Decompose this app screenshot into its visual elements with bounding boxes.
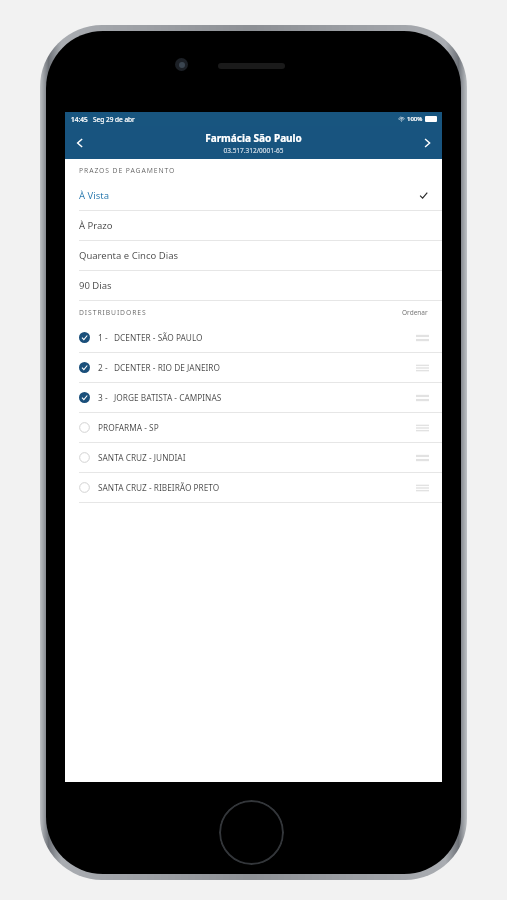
button[interactable]: 2 - DCENTER - RIO DE JANEIRO [65,353,442,382]
staticText: 03.517.312/0001-65 [223,146,284,155]
button[interactable]: Reordenar [414,451,430,465]
staticText: DISTRIBUIDORES [79,308,147,317]
button[interactable]: 1 - DCENTER - SÃO PAULO [65,323,442,352]
button[interactable]: Reordenar [414,361,430,375]
button[interactable]: À Vista [65,181,442,210]
staticText: 2 - DCENTER - RIO DE JANEIRO [98,362,221,373]
staticText: Farmácia São Paulo [205,131,302,145]
staticText: SANTA CRUZ - JUNDIAI [98,452,186,463]
staticText: Quarenta e Cinco Dias [79,249,179,262]
staticText: À Vista [79,189,110,202]
staticText: Ordenar [402,308,428,317]
staticText: SANTA CRUZ - RIBEIRÃO PRETO [98,482,220,493]
button[interactable]: Quarenta e Cinco Dias [65,241,442,270]
button[interactable]: Ordenar [402,308,428,317]
button[interactable]: Reordenar [414,421,430,435]
button[interactable]: À Prazo [65,211,442,240]
button[interactable]: Avançar [412,126,442,159]
button[interactable]: 90 Dias [65,271,442,300]
staticText: 90 Dias [79,279,112,292]
button[interactable]: Reordenar [414,391,430,405]
button[interactable]: SANTA CRUZ - JUNDIAI [65,443,442,472]
staticText: Seg 29 de abr [93,115,135,124]
staticText: 100% [407,115,423,123]
staticText: PRAZOS DE PAGAMENTO [79,166,176,175]
button[interactable]: PROFARMA - SP [65,413,442,442]
button[interactable]: 3 - JORGE BATISTA - CAMPINAS [65,383,442,412]
staticText: À Prazo [79,219,113,232]
staticText: 14:45 [71,115,88,124]
button[interactable]: SANTA CRUZ - RIBEIRÃO PRETO [65,473,442,502]
button[interactable]: Reordenar [414,481,430,495]
button[interactable]: Reordenar [414,331,430,345]
staticText: PROFARMA - SP [98,422,159,433]
staticText: 3 - JORGE BATISTA - CAMPINAS [98,392,222,403]
staticText: 1 - DCENTER - SÃO PAULO [98,332,203,343]
button[interactable]: Voltar [65,126,95,159]
